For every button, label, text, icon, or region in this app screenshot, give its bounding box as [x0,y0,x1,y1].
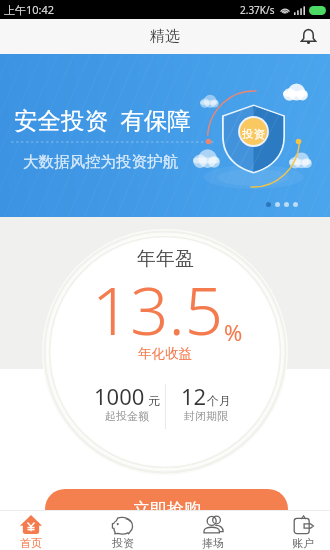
staticText: 1000 [94,381,145,411]
staticText: 年化收益 [138,345,192,362]
staticText: 精选 [150,27,180,46]
button[interactable]: 捧场 [172,510,254,550]
button[interactable]: Notifications [294,23,322,51]
staticText: 投资 [242,127,265,141]
button[interactable]: 投资 [82,510,164,550]
staticText: 起投金额 [105,409,149,423]
staticText: 元 [145,392,161,408]
staticText: 账户 [292,536,314,550]
staticText: % [224,317,243,347]
staticText: 立即抢购 [133,499,201,520]
staticText: 封闭期限 [184,409,228,423]
button[interactable]: 账户 [262,510,330,550]
staticText: 捧场 [202,536,224,550]
staticText: 2.37K/s [240,3,275,17]
staticText: 首页 [20,536,42,550]
staticText: 大数据风控为投资护航 [23,152,178,172]
staticText: 12 [181,381,207,411]
staticText: 个月 [207,393,231,408]
staticText: 年年盈 [137,247,194,271]
staticText: 投资 [112,536,134,550]
staticText: 安全投资 有保障 [14,104,191,136]
staticText: 13.5 [92,263,224,354]
button[interactable]: 立即抢购 [45,489,288,529]
button[interactable]: 首页 [0,510,72,550]
staticText: 上午10:42 [4,2,55,17]
